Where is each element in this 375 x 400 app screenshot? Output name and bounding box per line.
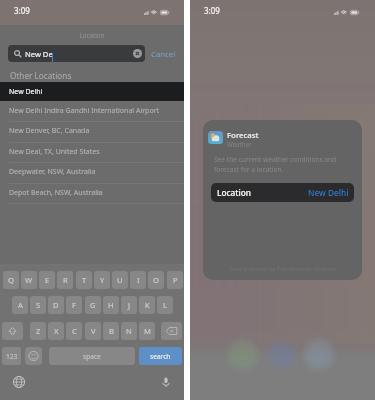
- button[interactable]: S: [30, 296, 46, 314]
- button[interactable]: F: [66, 296, 82, 314]
- staticText: Forecast: [227, 130, 259, 141]
- staticText: Deepwater, NSW, Australia: [9, 167, 96, 177]
- button[interactable]: J: [121, 296, 137, 314]
- staticText: X: [54, 326, 59, 336]
- button[interactable]: Cancel: [151, 49, 176, 60]
- staticText: P: [173, 275, 178, 285]
- staticText: M: [144, 326, 151, 336]
- staticText: T: [82, 275, 87, 285]
- staticText: U: [117, 275, 123, 285]
- staticText: 3:09: [14, 5, 30, 16]
- button[interactable]: New Delhi: [0, 82, 184, 101]
- staticText: New Delhi Indira Gandhi International Ai…: [9, 106, 160, 116]
- staticText: B: [109, 326, 114, 336]
- staticText: Location: [0, 31, 184, 39]
- button[interactable]: Location: [211, 183, 354, 202]
- staticText: Y: [100, 275, 105, 285]
- button[interactable]: E: [39, 271, 55, 289]
- button[interactable]: 123: [2, 347, 21, 365]
- button[interactable]: W: [21, 271, 37, 289]
- staticText: Z: [36, 326, 41, 336]
- staticText: Q: [8, 275, 14, 285]
- button[interactable]: Depot Beach, NSW, Australia: [0, 183, 184, 203]
- staticText: New Delhi: [9, 87, 43, 97]
- staticText: C: [72, 326, 77, 336]
- staticText: 3:09: [204, 5, 220, 16]
- button[interactable]: C: [66, 322, 82, 340]
- button[interactable]: H: [103, 296, 119, 314]
- staticText: H: [108, 300, 114, 310]
- button[interactable]: Shift: [2, 322, 23, 340]
- button[interactable]: space: [49, 347, 135, 365]
- button[interactable]: New Delhi Indira Gandhi International Ai…: [0, 101, 184, 121]
- staticText: J: [128, 300, 131, 310]
- button[interactable]: Dictate: [159, 375, 173, 389]
- staticText: 123: [6, 352, 18, 361]
- staticText: I: [137, 275, 140, 285]
- staticText: A: [18, 300, 23, 310]
- button[interactable]: Deepwater, NSW, Australia: [0, 162, 184, 182]
- button[interactable]: U: [112, 271, 128, 289]
- button[interactable]: A: [12, 296, 28, 314]
- button[interactable]: K: [139, 296, 155, 314]
- staticText: Depot Beach, NSW, Australia: [9, 188, 103, 198]
- button[interactable]: R: [57, 271, 73, 289]
- button[interactable]: I: [130, 271, 146, 289]
- staticText: V: [91, 326, 96, 336]
- button[interactable]: Clear text: [133, 49, 142, 58]
- staticText: E: [45, 275, 50, 285]
- staticText: D: [53, 300, 59, 310]
- staticText: S: [36, 300, 41, 310]
- button[interactable]: O: [148, 271, 164, 289]
- button[interactable]: New Deal, TX, United States: [0, 142, 184, 162]
- staticText: New Deal, TX, United States: [9, 147, 100, 157]
- button[interactable]: X: [48, 322, 64, 340]
- button[interactable]: Q: [3, 271, 19, 289]
- button[interactable]: D: [48, 296, 64, 314]
- staticText: search: [150, 352, 171, 361]
- button[interactable]: Emoji: [25, 347, 42, 365]
- staticText: O: [153, 275, 159, 285]
- staticText: Weather: [227, 140, 252, 148]
- button[interactable]: P: [167, 271, 183, 289]
- button[interactable]: Y: [94, 271, 110, 289]
- button[interactable]: L: [157, 296, 173, 314]
- staticText: K: [145, 300, 150, 310]
- button[interactable]: New De: [8, 45, 145, 62]
- button[interactable]: Switch keyboard language: [12, 375, 26, 389]
- staticText: R: [63, 275, 68, 285]
- button[interactable]: G: [85, 296, 101, 314]
- staticText: New De: [25, 49, 53, 59]
- staticText: W: [25, 275, 33, 285]
- button[interactable]: T: [76, 271, 92, 289]
- button[interactable]: V: [85, 322, 101, 340]
- staticText: space: [83, 352, 101, 361]
- staticText: Location: [217, 187, 252, 198]
- button[interactable]: New Denver, BC, Canada: [0, 121, 184, 141]
- button[interactable]: N: [121, 322, 137, 340]
- staticText: F: [72, 300, 76, 310]
- button[interactable]: search: [139, 347, 182, 365]
- staticText: New Denver, BC, Canada: [9, 126, 90, 136]
- staticText: New Delhi: [308, 187, 349, 198]
- staticText: N: [126, 326, 132, 336]
- staticText: See the current weather conditions and f…: [214, 155, 337, 174]
- staticText: G: [90, 300, 96, 310]
- staticText: L: [163, 300, 167, 310]
- staticText: Cancel: [151, 49, 176, 60]
- button[interactable]: Backspace: [161, 322, 182, 340]
- staticText: Other Locations: [10, 70, 72, 81]
- button[interactable]: Z: [30, 322, 46, 340]
- button[interactable]: M: [139, 322, 155, 340]
- button[interactable]: B: [103, 322, 119, 340]
